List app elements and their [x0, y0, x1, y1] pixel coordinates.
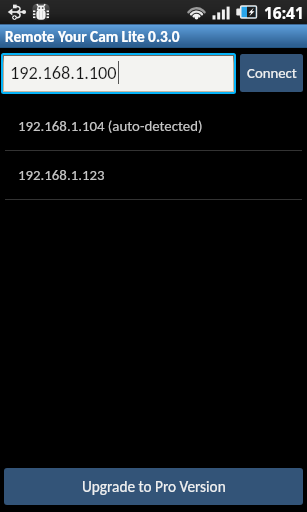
- staticText: 192.168.1.123: [18, 166, 105, 184]
- button[interactable]: 192.168.1.100: [4, 56, 233, 91]
- button[interactable]: Upgrade to Pro Version: [4, 468, 303, 505]
- staticText: Remote Your Cam Lite 0.3.0: [5, 27, 180, 46]
- button[interactable]: 192.168.1.123: [0, 151, 307, 200]
- button[interactable]: Connect: [240, 54, 303, 92]
- staticText: 192.168.1.104 (auto-detected): [18, 117, 203, 135]
- staticText: 192.168.1.100: [10, 62, 117, 84]
- staticText: Upgrade to Pro Version: [82, 477, 226, 496]
- button[interactable]: 192.168.1.104 (auto-detected): [0, 102, 307, 151]
- staticText: 16:41: [264, 2, 304, 23]
- staticText: Connect: [247, 64, 297, 82]
